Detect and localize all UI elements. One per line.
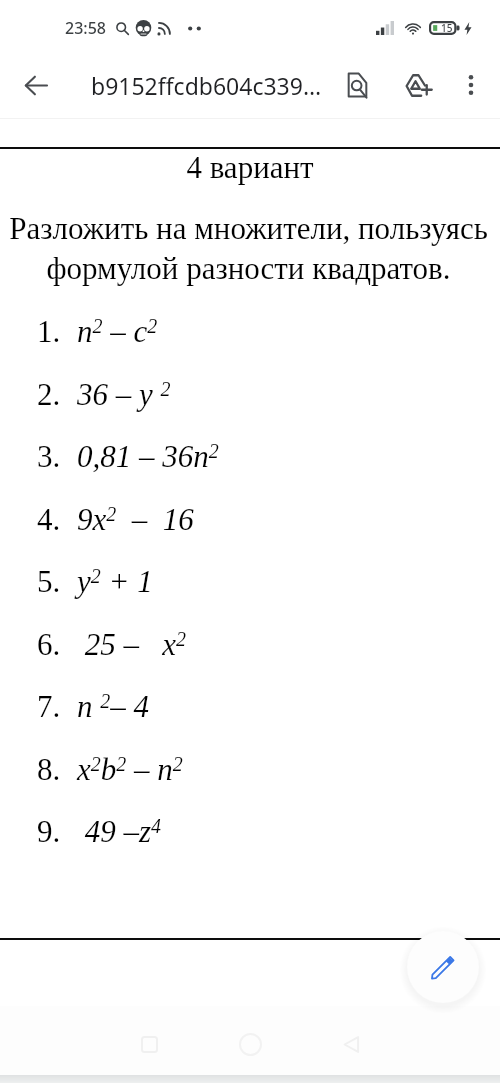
- staticText: 9.: [37, 814, 61, 848]
- staticText: 4.: [37, 502, 61, 536]
- staticText: 23:58: [65, 17, 106, 39]
- staticText: 8.: [37, 752, 61, 786]
- button[interactable]: More options: [449, 52, 493, 118]
- staticText: 15: [441, 21, 453, 35]
- button[interactable]: Back: [301, 1006, 402, 1083]
- staticText: 36 – y 2: [77, 377, 171, 411]
- staticText: 0,81 – 36n2: [77, 439, 219, 473]
- button[interactable]: Back: [0, 52, 71, 118]
- staticText: 9x2 – 16: [77, 502, 194, 536]
- button[interactable]: Add to Drive: [388, 52, 449, 118]
- staticText: 4 вариант: [0, 150, 500, 184]
- staticText: 3.: [37, 439, 61, 473]
- button[interactable]: Find in document: [326, 52, 388, 118]
- staticText: n 2– 4: [77, 689, 149, 723]
- staticText: 1.: [37, 314, 61, 348]
- staticText: Разложить на множители, пользуясь формул…: [5, 211, 492, 285]
- staticText: b9152ffcdb604c339…: [91, 70, 346, 101]
- staticText: 5.: [37, 564, 61, 598]
- staticText: 7.: [37, 689, 61, 723]
- staticText: y2 + 1: [77, 564, 153, 598]
- staticText: x2b2 – n2: [77, 752, 183, 786]
- button[interactable]: Home: [200, 1006, 301, 1083]
- staticText: 49 –z4: [77, 814, 162, 848]
- staticText: n2 – c2: [77, 314, 158, 348]
- button[interactable]: Edit: [407, 931, 479, 1003]
- staticText: 6.: [37, 627, 61, 661]
- button[interactable]: Recents: [99, 1006, 200, 1083]
- staticText: 25 – x2: [77, 627, 187, 661]
- staticText: 2.: [37, 377, 61, 411]
